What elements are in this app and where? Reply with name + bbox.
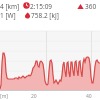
button[interactable]: 758.2 [kJ] <box>31 11 59 20</box>
staticText: 758.2 [kJ] <box>31 11 59 20</box>
staticText: 4 [km] <box>0 2 20 11</box>
staticText: 40 <box>86 93 92 100</box>
button[interactable]: 1 [W] <box>0 11 16 20</box>
staticText: 20 <box>31 93 37 100</box>
staticText: 2:15:09 <box>30 2 53 11</box>
button[interactable]: Elevation <box>77 3 84 10</box>
button[interactable]: 2:15:09 <box>30 2 53 11</box>
button[interactable]: 360 <box>85 2 97 11</box>
button[interactable]: Energy <box>24 12 31 19</box>
staticText: [m] <box>0 93 8 100</box>
staticText: 1 [W] <box>0 11 16 20</box>
staticText: 360 <box>85 2 97 11</box>
button[interactable]: 4 [km] <box>0 2 20 11</box>
button[interactable]: Duration <box>23 2 30 9</box>
